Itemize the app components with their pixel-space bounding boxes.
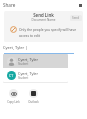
staticText: Send Link bbox=[4, 12, 83, 18]
staticText: Cyert, Tyler | bbox=[3, 45, 28, 50]
button[interactable]: Share bbox=[2, 1, 17, 9]
staticText: Outlook bbox=[28, 100, 39, 104]
staticText: Student bbox=[18, 62, 29, 66]
staticText: Cyert, Tyler bbox=[18, 57, 39, 62]
staticText: Only the people you specify will have ac… bbox=[19, 27, 76, 38]
staticText: Student bbox=[18, 76, 29, 80]
button[interactable]: Copy Link bbox=[4, 89, 22, 104]
staticText: Copy Link bbox=[7, 100, 20, 104]
staticText: CT bbox=[9, 73, 14, 78]
staticText: Cyert, Tyler bbox=[18, 71, 39, 76]
staticText: Document Name bbox=[4, 18, 83, 22]
button[interactable]: CT bbox=[3, 68, 68, 82]
button[interactable]: Cyert, Tyler bbox=[3, 54, 68, 68]
button[interactable]: Outlook bbox=[24, 89, 42, 104]
button[interactable]: Send bbox=[70, 15, 82, 21]
staticText: Send bbox=[72, 16, 80, 20]
button[interactable]: More options bbox=[77, 2, 84, 9]
staticText: Share bbox=[3, 2, 16, 8]
